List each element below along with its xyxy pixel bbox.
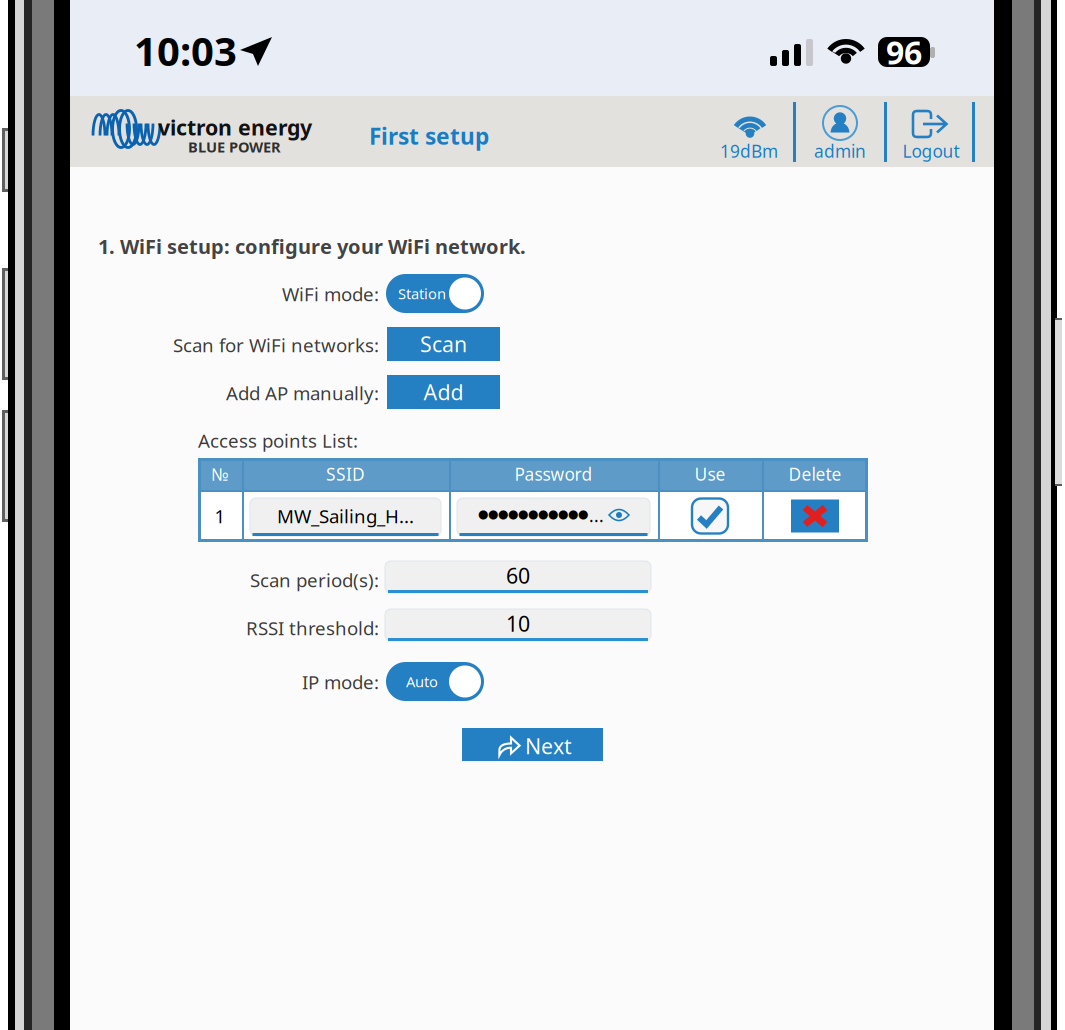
button[interactable]: First setup [369,121,489,151]
staticText: 10 [506,609,530,638]
staticText: Next [525,732,572,760]
staticText: 10:03 [134,24,237,77]
staticText: Scan period(s): [250,568,379,592]
button[interactable]: Station [387,275,483,312]
button[interactable]: Add [387,375,500,409]
button[interactable]: Delete access point [791,499,839,532]
staticText: Access points List: [198,428,358,453]
staticText: 1 [214,504,225,528]
staticText: Use [694,462,725,485]
staticText: RSSI threshold: [246,616,379,640]
staticText: 96 [886,31,922,73]
staticText: Password [514,462,592,485]
staticText: 1. WiFi setup: configure your WiFi netwo… [98,233,526,260]
staticText: victron energy [158,113,312,141]
button[interactable]: Next [462,728,603,761]
staticText: Auto [406,672,438,691]
button[interactable]: Scan [387,327,500,361]
staticText: ... [589,504,604,527]
staticText: Add [423,378,463,406]
button[interactable]: admin [796,99,884,165]
staticText: Add AP manually: [226,381,379,405]
staticText: IP mode: [302,670,379,694]
staticText: 19dBm [720,139,778,162]
staticText: Scan [420,330,467,358]
staticText: Scan for WiFi networks: [173,333,379,357]
button[interactable]: Logout [887,99,975,165]
staticText: Logout [902,139,959,162]
staticText: Delete [788,462,841,485]
staticText: admin [814,139,866,162]
staticText: № [211,462,229,485]
staticText: First setup [369,121,489,151]
staticText: SSID [326,462,365,485]
staticText: 60 [506,561,530,590]
button[interactable]: 19dBm [705,99,793,165]
button[interactable]: Auto [387,663,483,700]
staticText: Station [398,284,446,303]
button[interactable]: Use this access point [692,498,728,533]
staticText: MW_Sailing_H... [277,504,414,528]
staticText: WiFi mode: [282,282,379,306]
staticText: BLUE POWER [188,137,281,156]
staticText: ●●●●●●●●●●● [478,507,588,521]
